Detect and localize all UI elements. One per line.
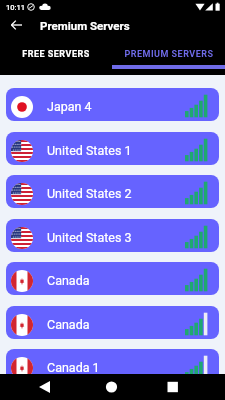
staticText: PREMIUM SERVERS [124, 49, 214, 60]
button[interactable]: United States 1 [6, 132, 219, 165]
staticText: Canada [47, 317, 90, 332]
staticText: Japan 4 [47, 99, 92, 114]
staticText: Canada [47, 273, 90, 288]
staticText: United States 2 [47, 186, 132, 201]
button[interactable]: Japan 4 [6, 88, 219, 121]
button[interactable]: Canada [6, 306, 219, 339]
staticText: 10:11 [6, 3, 26, 12]
button[interactable]: United States 3 [6, 219, 219, 252]
button[interactable]: PREMIUM SERVERS [112, 35, 225, 73]
button[interactable]: Canada 1 [6, 349, 219, 382]
staticText: FREE SERVERS [22, 49, 90, 60]
staticText: Canada 1 [47, 360, 100, 375]
staticText: Premium Servers [40, 19, 130, 32]
button[interactable]: FREE SERVERS [0, 35, 112, 73]
button[interactable]: Canada [6, 262, 219, 295]
staticText: United States 1 [47, 143, 132, 158]
button[interactable]: Back [0, 15, 33, 35]
staticText: United States 3 [47, 230, 132, 245]
button[interactable]: United States 2 [6, 175, 219, 208]
